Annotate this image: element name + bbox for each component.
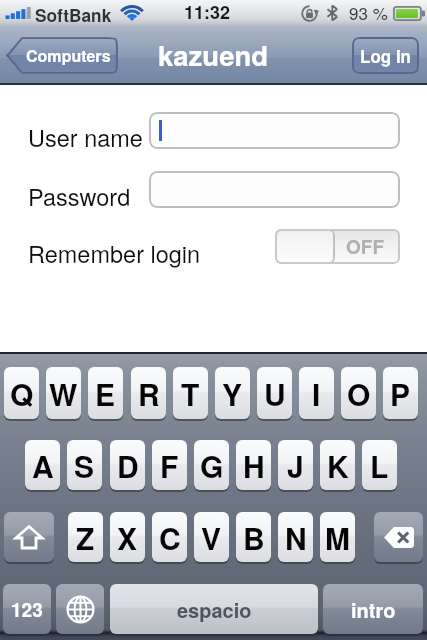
staticText: 123 [11,596,43,623]
button[interactable]: OFF [275,229,400,264]
staticText: A [32,444,54,487]
staticText: O [347,372,371,415]
button[interactable]: M [320,512,355,562]
staticText: Q [10,372,34,415]
staticText: B [243,516,265,559]
staticText: M [325,516,350,559]
button[interactable]: L [362,440,397,490]
staticText: kazuend [158,35,269,74]
staticText: Y [222,372,243,415]
button[interactable] [149,171,400,208]
button[interactable]: Y [215,367,250,419]
button[interactable]: J [278,440,313,490]
button[interactable]: R [131,367,166,419]
staticText: SoftBank [35,3,112,25]
staticText: E [95,372,116,415]
button[interactable]: U [257,367,292,419]
staticText: P [390,372,411,415]
button[interactable]: S [67,440,102,490]
button[interactable]: I [299,367,334,419]
staticText: H [243,444,265,487]
staticText: Computers [26,44,111,67]
button[interactable]: espacio [110,584,318,634]
staticText: S [74,444,95,487]
staticText: N [285,516,307,559]
button[interactable]: A [25,440,60,490]
button[interactable]: W [46,367,81,419]
button[interactable]: Computers [5,37,118,74]
button[interactable]: X [110,512,145,562]
button[interactable] [149,112,400,149]
button[interactable]: C [152,512,187,562]
button[interactable]: Shift [4,512,54,562]
staticText: T [181,372,200,415]
button[interactable]: E [88,367,123,419]
staticText: Remember login [28,236,201,270]
staticText: D [117,444,139,487]
button[interactable]: D [110,440,145,490]
button[interactable]: 123 [3,584,51,634]
staticText: L [370,444,389,487]
button[interactable]: T [173,367,208,419]
staticText: OFF [346,233,385,260]
button[interactable]: Backspace [374,512,423,562]
staticText: I [312,372,321,415]
staticText: 11:32 [184,0,231,24]
staticText: espacio [177,595,252,624]
staticText: Z [76,516,95,559]
staticText: Password [28,179,131,213]
staticText: C [159,516,181,559]
staticText: X [117,516,138,559]
button[interactable]: Z [68,512,103,562]
button[interactable]: N [278,512,313,562]
staticText: F [160,444,179,487]
staticText: G [200,444,224,487]
button[interactable]: O [341,367,376,419]
staticText: V [201,516,222,559]
button[interactable]: Log In [352,37,419,74]
button[interactable]: intro [323,584,423,634]
staticText: Log In [360,44,411,68]
staticText: User name [28,120,143,154]
button[interactable]: F [152,440,187,490]
staticText: U [264,372,286,415]
button[interactable]: G [194,440,229,490]
staticText: J [287,444,304,487]
button[interactable]: Change language [56,584,104,634]
button[interactable]: V [194,512,229,562]
staticText: 93 % [349,0,388,24]
button[interactable]: Q [4,367,39,419]
button[interactable]: H [236,440,271,490]
staticText: W [49,372,78,415]
staticText: R [138,372,160,415]
staticText: intro [351,595,396,624]
button[interactable]: B [236,512,271,562]
staticText: K [327,444,349,487]
button[interactable]: K [320,440,355,490]
button[interactable]: P [383,367,418,419]
